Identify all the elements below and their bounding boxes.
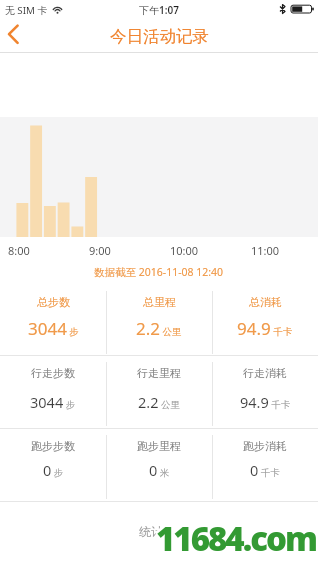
- staticText: 0 步: [43, 460, 64, 480]
- button[interactable]: [0, 362, 106, 426]
- button[interactable]: [0, 20, 44, 52]
- staticText: 无 SIM 卡: [5, 4, 48, 17]
- staticText: 下午1:07: [139, 3, 179, 17]
- button[interactable]: [212, 436, 318, 500]
- staticText: 跑步消耗: [243, 439, 287, 453]
- staticText: 0 千卡: [250, 460, 280, 480]
- button[interactable]: [106, 436, 212, 500]
- staticText: 94.9 千卡: [240, 392, 291, 412]
- staticText: 跑步里程: [137, 439, 181, 453]
- button[interactable]: [0, 290, 106, 354]
- staticText: 3044 步: [30, 392, 76, 412]
- staticText: 总里程: [143, 295, 176, 309]
- staticText: 8:00: [8, 243, 30, 258]
- staticText: 11:00: [251, 243, 280, 258]
- staticText: 跑步步数: [31, 439, 75, 453]
- staticText: 2.2 公里: [138, 392, 180, 412]
- button[interactable]: [212, 290, 318, 354]
- staticText: 今日活动记录: [110, 26, 209, 47]
- staticText: 统计: [139, 524, 163, 539]
- staticText: 9:00: [89, 243, 111, 258]
- button[interactable]: 11684.com: [154, 516, 318, 560]
- staticText: 行走里程: [137, 366, 181, 380]
- button[interactable]: [106, 290, 212, 354]
- staticText: 11684.com: [156, 516, 317, 560]
- staticText: 10:00: [170, 243, 199, 258]
- staticText: 94.9 千卡: [237, 317, 293, 340]
- staticText: 11684.com: [156, 516, 317, 560]
- button[interactable]: [0, 436, 106, 500]
- button[interactable]: [106, 362, 212, 426]
- staticText: 总步数: [37, 295, 70, 309]
- staticText: 行走步数: [31, 366, 75, 380]
- button[interactable]: [212, 362, 318, 426]
- staticText: 0 米: [149, 460, 170, 480]
- staticText: 3044 步: [28, 317, 79, 340]
- staticText: 行走消耗: [243, 366, 287, 380]
- staticText: 2.2 公里: [136, 317, 182, 340]
- staticText: 数据截至 2016-11-08 12:40: [94, 265, 224, 279]
- staticText: 总消耗: [249, 295, 282, 309]
